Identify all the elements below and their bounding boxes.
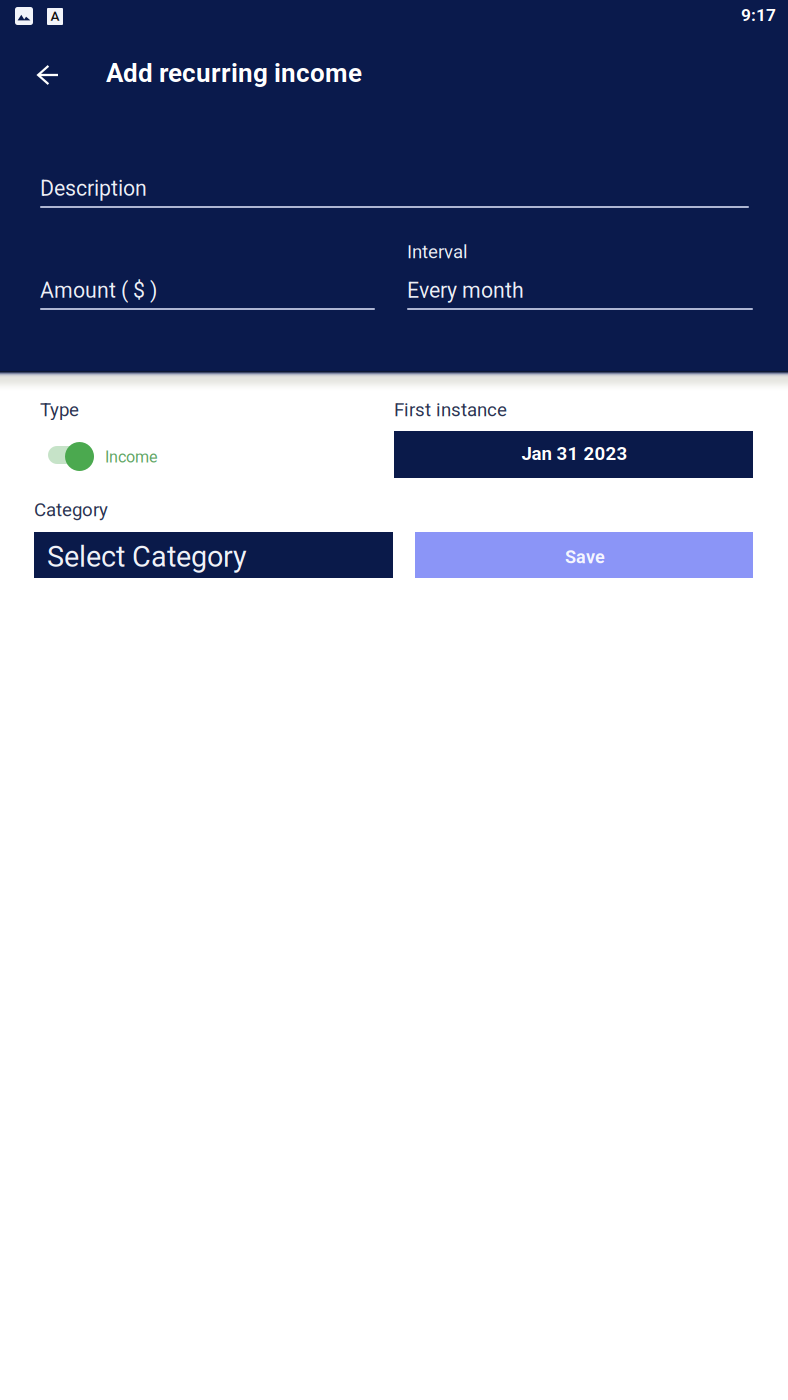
- button[interactable]: Income: [47, 440, 267, 474]
- staticText: A: [50, 8, 59, 24]
- staticText: Add recurring income: [106, 58, 362, 88]
- button[interactable]: Jan 31 2023: [394, 431, 753, 478]
- staticText: Every month: [407, 278, 524, 303]
- staticText: Description: [40, 176, 147, 201]
- staticText: Amount ( $ ): [40, 278, 157, 303]
- staticText: Jan 31 2023: [521, 443, 627, 464]
- staticText: Select Category: [47, 540, 247, 574]
- staticText: Interval: [407, 241, 468, 263]
- button[interactable]: Amount ( $ ): [40, 278, 375, 308]
- button[interactable]: Every month: [407, 278, 753, 308]
- button[interactable]: Description: [40, 176, 749, 206]
- staticText: Income: [105, 447, 158, 466]
- button[interactable]: Back: [22, 49, 74, 101]
- staticText: 9:17: [741, 5, 776, 25]
- staticText: Category: [34, 499, 108, 521]
- button[interactable]: Select Category: [34, 532, 393, 578]
- staticText: First instance: [394, 399, 507, 421]
- staticText: Save: [565, 546, 605, 568]
- staticText: Type: [40, 399, 79, 421]
- button[interactable]: Save: [415, 532, 753, 578]
